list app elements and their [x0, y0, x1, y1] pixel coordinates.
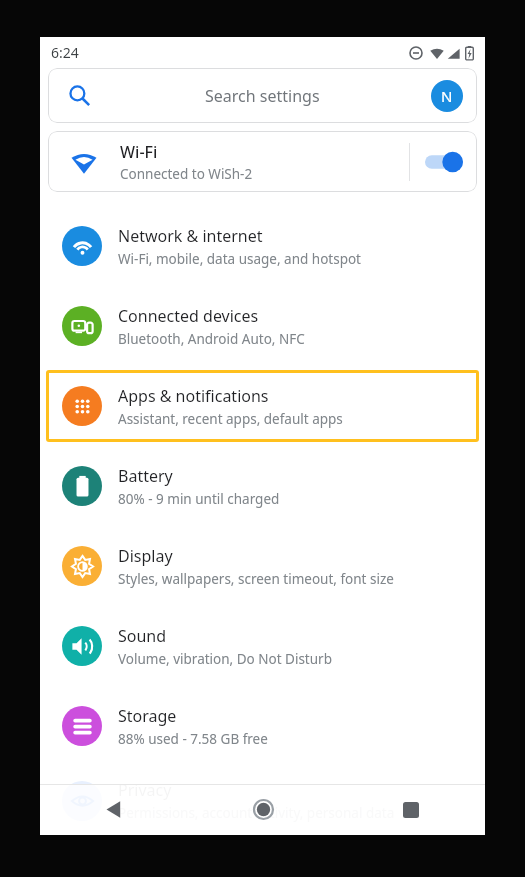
button[interactable]: Wi-Fi toggle [410, 131, 477, 192]
staticText: Wi-Fi, mobile, data usage, and hotspot [118, 250, 361, 268]
button[interactable]: Storage [46, 686, 479, 766]
staticText: Assistant, recent apps, default apps [118, 410, 343, 428]
button[interactable]: Privacy [46, 766, 479, 835]
staticText: Privacy [118, 779, 172, 801]
button[interactable]: Connected devices [46, 286, 479, 366]
button[interactable]: Search [48, 68, 477, 123]
staticText: Connected to WiSh-2 [120, 165, 253, 183]
button[interactable]: Sound [46, 606, 479, 686]
button[interactable]: Battery [46, 446, 479, 526]
staticText: Permissions, account activity, personal … [118, 804, 395, 822]
staticText: Bluetooth, Android Auto, NFC [118, 330, 305, 348]
staticText: Sound [118, 625, 167, 647]
button[interactable]: Back [40, 784, 189, 835]
staticText: N [441, 86, 453, 106]
staticText: 80% - 9 min until charged [118, 490, 280, 508]
staticText: Display [118, 545, 173, 567]
button[interactable]: Display [46, 526, 479, 606]
staticText: Storage [118, 705, 177, 727]
staticText: 6:24 [51, 43, 79, 62]
staticText: Search settings [205, 85, 320, 107]
staticText: Volume, vibration, Do Not Disturb [118, 650, 332, 668]
button[interactable]: Wi-Fi [48, 131, 477, 192]
button[interactable]: Home [189, 784, 337, 835]
staticText: Wi-Fi [120, 141, 158, 163]
staticText: Battery [118, 465, 173, 487]
staticText: Apps & notifications [118, 385, 269, 407]
button[interactable]: Apps & notifications [46, 370, 479, 442]
staticText: Connected devices [118, 305, 259, 327]
staticText: Network & internet [118, 225, 263, 247]
button[interactable]: Recent apps [337, 784, 485, 835]
staticText: 88% used - 7.58 GB free [118, 730, 268, 748]
button[interactable]: Account [431, 80, 463, 112]
staticText: Styles, wallpapers, screen timeout, font… [118, 570, 394, 588]
button[interactable]: Network & internet [46, 206, 479, 286]
other: Search [69, 85, 90, 106]
